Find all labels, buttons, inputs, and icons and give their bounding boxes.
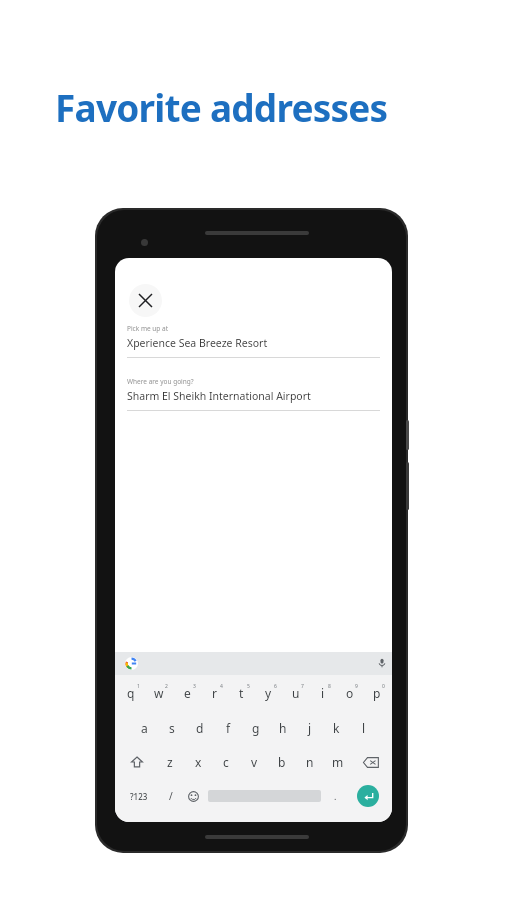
staticText: / [169, 789, 173, 803]
button[interactable]: Shift [118, 745, 156, 779]
staticText: j [308, 720, 312, 736]
button[interactable]: a [130, 711, 158, 745]
staticText: v [251, 754, 258, 770]
button[interactable]: Voice input [377, 658, 387, 668]
staticText: q [127, 685, 135, 701]
button[interactable]: r [201, 675, 228, 711]
staticText: 7 [301, 683, 304, 690]
button[interactable]: s [158, 711, 186, 745]
staticText: y [265, 685, 272, 701]
button[interactable]: h [269, 711, 296, 745]
staticText: ?123 [130, 791, 148, 802]
button[interactable]: l [350, 711, 377, 745]
button[interactable]: t [228, 675, 255, 711]
staticText: 9 [355, 683, 358, 690]
button[interactable]: Pick me up at [127, 324, 380, 358]
button[interactable]: Emoji [182, 779, 205, 813]
staticText: Sharm El Sheikh International Airport [127, 389, 311, 403]
button[interactable]: x [184, 745, 212, 779]
button[interactable]: m [324, 745, 352, 779]
staticText: Xperience Sea Breeze Resort [127, 336, 268, 350]
button[interactable]: . [324, 779, 347, 813]
staticText: e [184, 685, 191, 701]
staticText: 1 [137, 683, 140, 690]
button[interactable]: u [282, 675, 309, 711]
staticText: n [306, 754, 314, 770]
staticText: z [167, 754, 173, 770]
staticText: o [346, 685, 354, 701]
staticText: p [373, 685, 381, 701]
button[interactable]: c [212, 745, 240, 779]
staticText: r [212, 685, 217, 701]
staticText: l [362, 720, 366, 736]
button[interactable]: v [240, 745, 268, 779]
staticText: 2 [165, 683, 168, 690]
staticText: b [278, 754, 286, 770]
button[interactable]: o [336, 675, 363, 711]
button[interactable]: w [145, 675, 173, 711]
staticText: w [154, 685, 164, 701]
button[interactable]: j [296, 711, 323, 745]
staticText: i [321, 685, 325, 701]
staticText: 4 [220, 683, 223, 690]
button[interactable]: Google [125, 657, 138, 670]
button[interactable]: Close [129, 284, 162, 317]
staticText: f [226, 720, 231, 736]
staticText: x [195, 754, 202, 770]
staticText: 0 [382, 683, 385, 690]
button[interactable]: z [156, 745, 184, 779]
button[interactable]: d [186, 711, 214, 745]
staticText: 3 [193, 683, 196, 690]
button[interactable]: f [214, 711, 242, 745]
button[interactable]: p [363, 675, 390, 711]
button[interactable]: ?123 [119, 779, 159, 813]
staticText: Where are you going? [127, 377, 194, 386]
button[interactable]: Enter [357, 785, 379, 807]
button[interactable]: k [323, 711, 350, 745]
staticText: s [169, 720, 175, 736]
staticText: k [333, 720, 340, 736]
staticText: g [252, 720, 260, 736]
staticText: c [223, 754, 229, 770]
button[interactable]: y [255, 675, 282, 711]
staticText: a [141, 720, 148, 736]
staticText: u [292, 685, 300, 701]
staticText: 8 [328, 683, 331, 690]
button[interactable]: g [242, 711, 269, 745]
staticText: d [196, 720, 204, 736]
button[interactable]: i [309, 675, 336, 711]
button[interactable]: q [117, 675, 145, 711]
button[interactable]: b [268, 745, 296, 779]
staticText: t [239, 685, 244, 701]
button[interactable]: e [173, 675, 201, 711]
staticText: 6 [274, 683, 277, 690]
button[interactable]: Backspace [352, 745, 389, 779]
staticText: Favorite addresses [55, 82, 388, 132]
staticText: 5 [247, 683, 250, 690]
staticText: Pick me up at [127, 324, 169, 333]
staticText: h [279, 720, 287, 736]
button[interactable]: / [159, 779, 182, 813]
staticText: . [334, 790, 337, 802]
staticText: m [332, 754, 344, 770]
button[interactable]: n [296, 745, 324, 779]
button[interactable]: Where are you going? [127, 377, 380, 411]
